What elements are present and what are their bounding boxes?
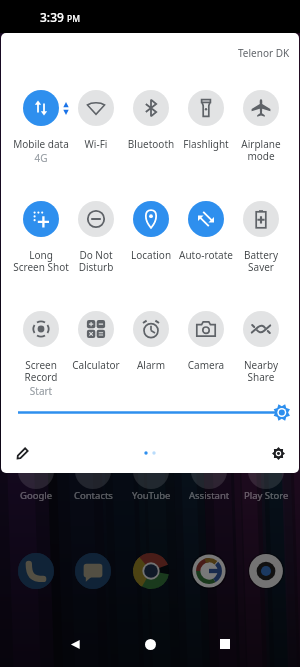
button[interactable]: Auto-rotate	[170, 201, 242, 263]
button[interactable]: Home	[137, 631, 163, 657]
button[interactable]: Alarm	[115, 311, 187, 373]
staticText: 3:39	[40, 9, 64, 25]
staticText: Airplane mode	[225, 137, 297, 163]
staticText: 4G	[5, 151, 77, 165]
staticText: Alarm	[115, 358, 187, 372]
staticText: Camera	[170, 358, 242, 372]
button[interactable]: YouTube	[133, 553, 169, 589]
staticText: Battery Saver	[225, 248, 297, 274]
button[interactable]: Edit tiles	[11, 442, 33, 464]
staticText: Screen Record	[5, 358, 77, 384]
staticText: Auto-rotate	[170, 248, 242, 262]
staticText: Bluetooth	[115, 137, 187, 151]
button[interactable]: Play Store	[248, 553, 284, 589]
staticText: Nearby Share	[225, 358, 297, 384]
staticText: YouTube	[132, 489, 171, 502]
staticText: Calculator	[60, 358, 132, 372]
staticText: Start	[5, 384, 77, 398]
staticText: Google	[20, 489, 53, 502]
button[interactable]: Assistant	[191, 553, 227, 589]
staticText: Wi-Fi	[60, 137, 132, 151]
button[interactable]: Battery Saver	[225, 201, 297, 263]
button[interactable]: Mobile data	[5, 90, 77, 152]
staticText: Location	[115, 248, 187, 262]
staticText: Contacts	[74, 489, 113, 502]
staticText: Telenor DK	[238, 46, 290, 60]
button[interactable]: Bluetooth	[115, 90, 187, 152]
button[interactable]: Calculator	[60, 311, 132, 373]
staticText: Flashlight	[170, 137, 242, 151]
staticText: Play Store	[244, 489, 289, 502]
button[interactable]: Screen Record	[5, 311, 77, 373]
button[interactable]: Settings	[267, 442, 289, 464]
button[interactable]: Recents	[212, 631, 238, 657]
button[interactable]: Brightness	[1, 399, 299, 425]
button[interactable]: Location	[115, 201, 187, 263]
button[interactable]: Airplane mode	[225, 90, 297, 152]
button[interactable]: Do Not Disturb	[60, 201, 132, 263]
staticText: PM	[67, 13, 80, 25]
staticText: Do Not Disturb	[60, 248, 132, 274]
button[interactable]: Camera	[170, 311, 242, 373]
button[interactable]: Wi-Fi	[60, 90, 132, 152]
button[interactable]: Contacts	[75, 553, 111, 589]
button[interactable]: Google	[18, 553, 54, 589]
staticText: Long Screen Shot	[5, 248, 77, 274]
button[interactable]: Long Screen Shot	[5, 201, 77, 263]
button[interactable]: Flashlight	[170, 90, 242, 152]
staticText: Assistant	[189, 489, 230, 502]
button[interactable]: Back	[62, 631, 88, 657]
staticText: Mobile data	[5, 137, 77, 151]
button[interactable]: Nearby Share	[225, 311, 297, 373]
